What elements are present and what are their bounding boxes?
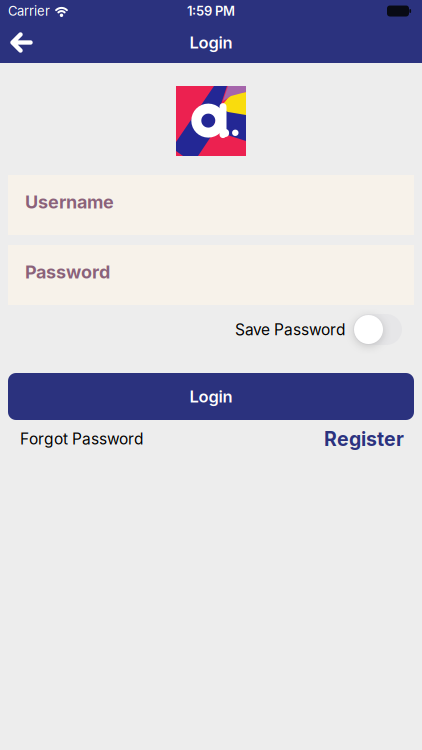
staticText: Login [189,386,232,406]
staticText: Forgot Password [20,429,143,448]
staticText: Username [25,191,114,213]
button[interactable]: Username [8,175,414,235]
button[interactable]: Password [8,245,414,305]
staticText: Register [324,427,404,451]
button[interactable] [353,314,402,345]
staticText: Password [25,261,110,283]
staticText: Login [189,32,232,52]
button[interactable]: Register [324,427,404,451]
staticText: Save Password [235,320,345,339]
button[interactable]: Forgot Password [20,429,143,448]
button[interactable]: Login [8,373,414,420]
staticText: Carrier [8,3,50,19]
staticText: 1:59 PM [187,3,235,19]
button[interactable] [10,33,32,52]
